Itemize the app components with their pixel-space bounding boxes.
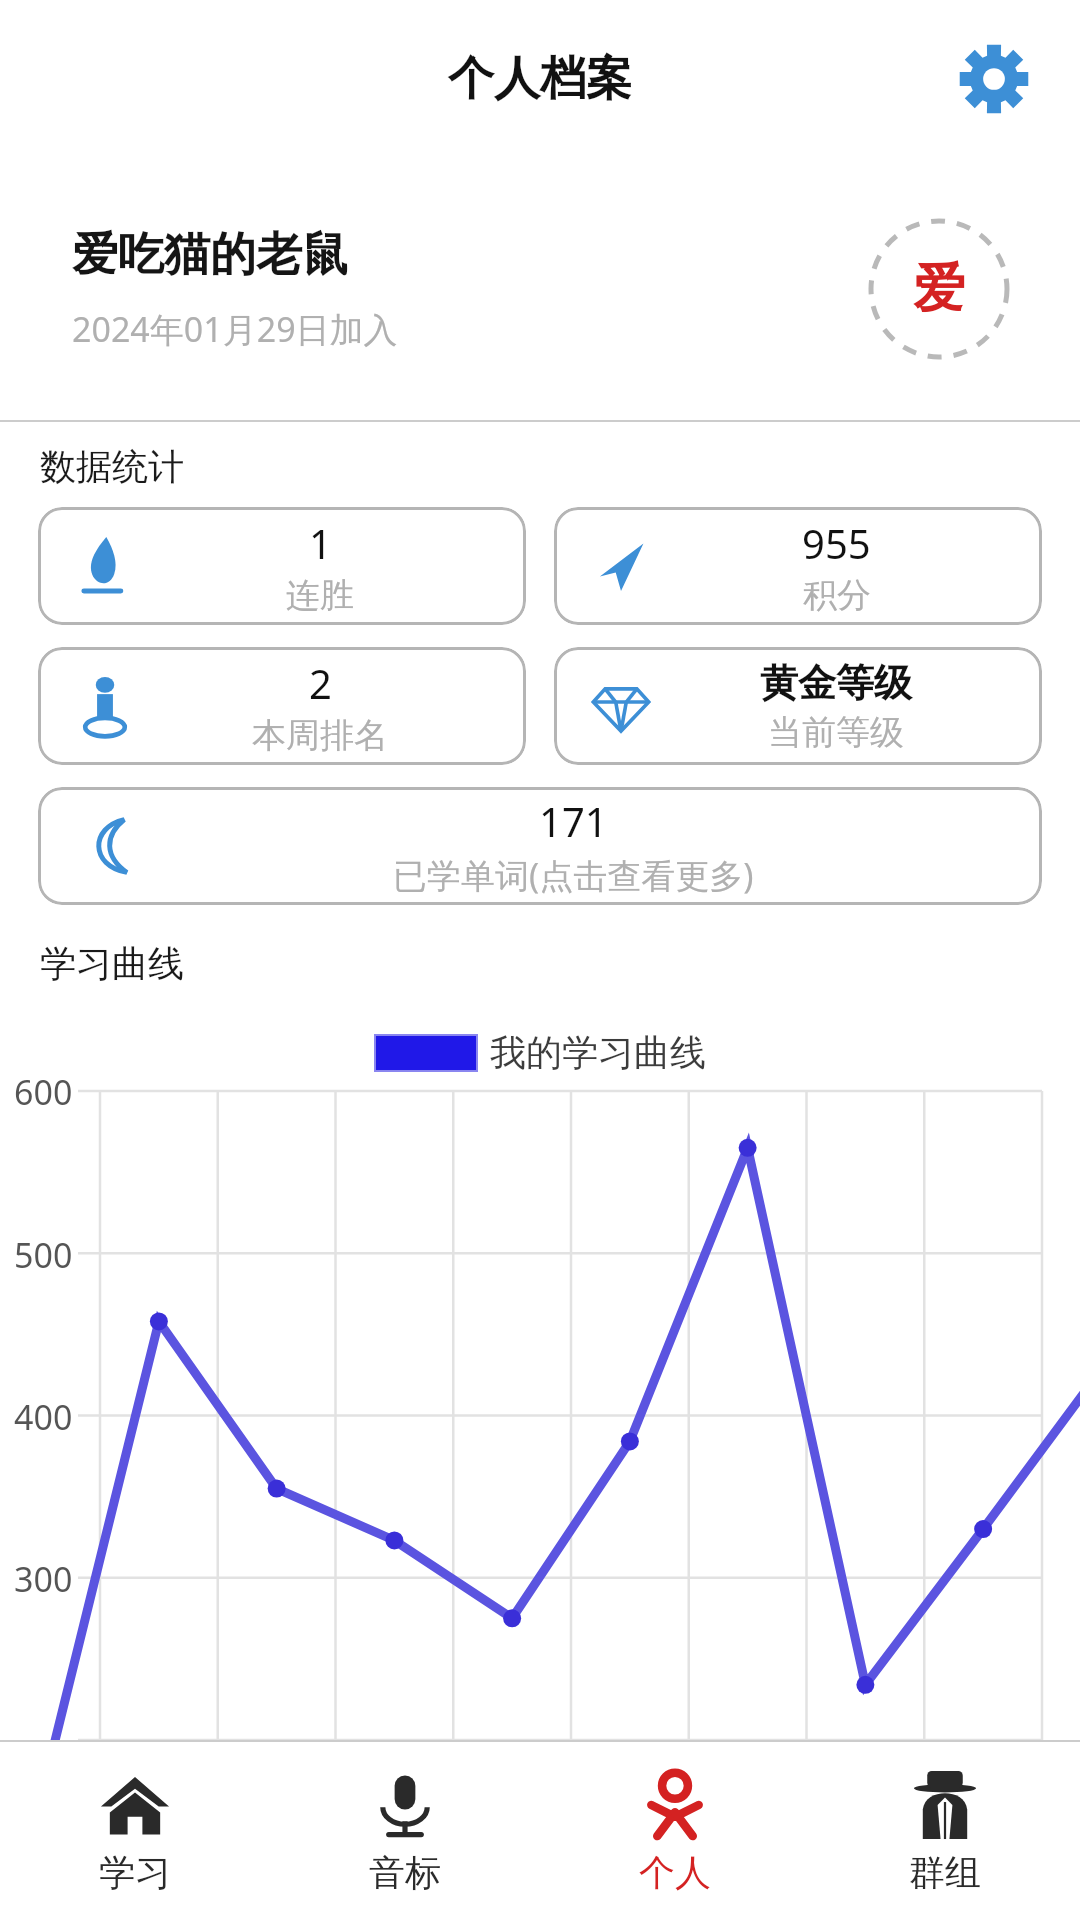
button[interactable]: 爱吃猫的老鼠	[0, 158, 1080, 420]
staticText: 学习曲线	[40, 941, 184, 986]
staticText: 个人档案	[448, 50, 632, 108]
button[interactable]: 音标	[270, 1742, 540, 1920]
staticText: 当前等级	[768, 711, 904, 754]
staticText: 300	[14, 1556, 73, 1602]
staticText: 学习	[99, 1850, 171, 1895]
staticText: 171	[539, 794, 608, 848]
staticText: 爱	[913, 256, 965, 322]
staticText: 数据统计	[40, 444, 184, 489]
staticText: 积分	[803, 574, 871, 617]
button[interactable]: 955	[554, 507, 1042, 625]
button[interactable]: 个人	[540, 1742, 810, 1920]
staticText: 爱吃猫的老鼠	[72, 226, 348, 284]
staticText: 2024年01月29日加入	[72, 306, 398, 352]
button[interactable]: 黄金等级	[554, 647, 1042, 765]
staticText: 群组	[909, 1850, 981, 1895]
button[interactable]: 1	[38, 507, 526, 625]
staticText: 音标	[369, 1850, 441, 1895]
staticText: 本周排名	[252, 714, 388, 757]
button[interactable]: 学习	[0, 1742, 270, 1920]
button[interactable]: 群组	[810, 1742, 1080, 1920]
staticText: 我的学习曲线	[490, 1030, 706, 1075]
staticText: 连胜	[286, 574, 354, 617]
staticText: 已学单词(点击查看更多)	[393, 852, 754, 898]
staticText: 1	[309, 516, 332, 570]
staticText: 2	[309, 656, 332, 710]
button[interactable]: 爱	[868, 218, 1010, 360]
button[interactable]: 171	[38, 787, 1042, 905]
staticText: 400	[14, 1394, 73, 1440]
staticText: 500	[14, 1232, 73, 1278]
staticText: 个人	[639, 1850, 711, 1895]
button[interactable]: 2	[38, 647, 526, 765]
staticText: 600	[14, 1069, 73, 1115]
staticText: 955	[802, 516, 871, 570]
button[interactable]: Settings	[952, 37, 1036, 121]
staticText: 黄金等级	[760, 659, 912, 707]
